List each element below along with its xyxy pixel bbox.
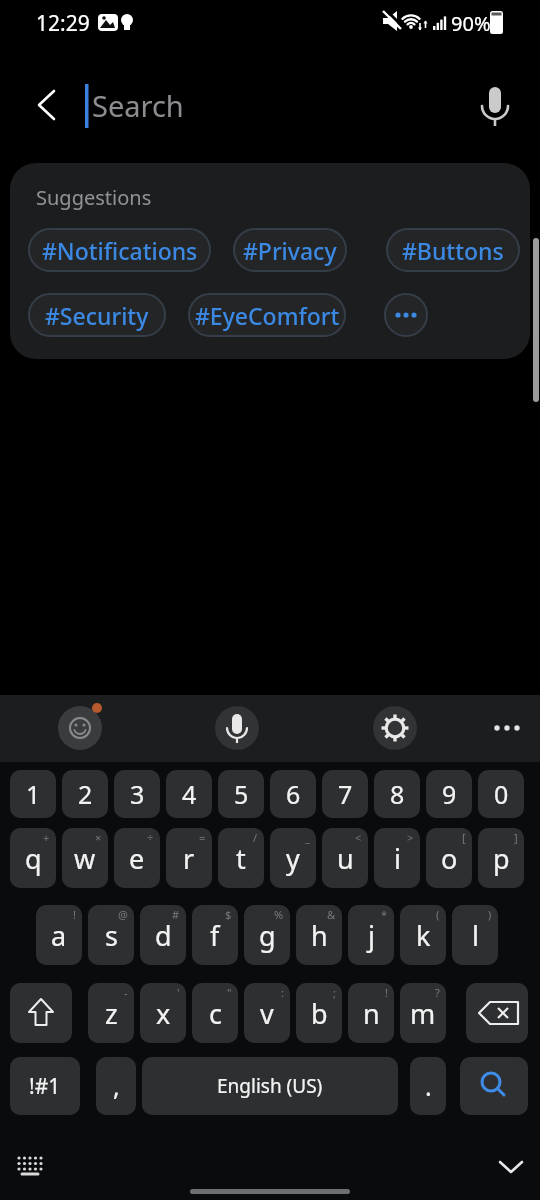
staticText: d: [155, 917, 172, 954]
staticText: u: [337, 840, 354, 877]
staticText: g: [259, 917, 276, 954]
staticText: 9: [442, 777, 457, 811]
staticText: #EyeComfort: [195, 300, 340, 331]
staticText: z: [105, 995, 118, 1032]
staticText: ]: [514, 830, 518, 845]
staticText: -: [124, 985, 128, 1000]
staticText: j: [368, 917, 375, 954]
staticText: 5: [234, 777, 249, 811]
staticText: o: [441, 840, 458, 877]
staticText: l: [472, 917, 479, 954]
staticText: [: [462, 830, 466, 845]
staticText: p: [493, 840, 510, 877]
staticText: :: [281, 985, 284, 1000]
staticText: Suggestions: [36, 184, 152, 211]
staticText: 90%: [451, 10, 491, 37]
staticText: s: [105, 917, 118, 954]
staticText: #: [172, 907, 180, 922]
staticText: 12:29: [36, 9, 90, 38]
staticText: %: [274, 907, 284, 922]
staticText: 8: [390, 777, 405, 811]
staticText: <: [355, 830, 362, 845]
staticText: 2: [78, 777, 93, 811]
staticText: !#1: [29, 1072, 61, 1101]
staticText: k: [416, 917, 431, 954]
staticText: m: [410, 995, 436, 1032]
staticText: h: [311, 917, 328, 954]
staticText: b: [311, 995, 328, 1032]
staticText: c: [209, 995, 222, 1032]
staticText: .: [425, 1069, 432, 1103]
staticText: #Privacy: [243, 235, 337, 266]
staticText: ,: [113, 1069, 120, 1103]
staticText: v: [260, 995, 274, 1032]
staticText: *: [381, 907, 388, 922]
staticText: a: [51, 917, 67, 954]
staticText: /: [253, 830, 258, 845]
staticText: _: [305, 830, 310, 845]
staticText: (: [436, 907, 440, 922]
staticText: i: [394, 840, 401, 877]
staticText: 6: [286, 777, 301, 811]
staticText: &: [327, 907, 336, 922]
staticText: y: [286, 840, 300, 877]
staticText: ×: [95, 830, 102, 845]
staticText: t: [236, 840, 246, 877]
staticText: 4: [182, 777, 197, 811]
staticText: +: [43, 830, 50, 845]
staticText: x: [156, 995, 171, 1032]
staticText: ÷: [147, 830, 154, 845]
staticText: ': [177, 985, 180, 1000]
staticText: ;: [333, 985, 336, 1000]
staticText: e: [129, 840, 145, 877]
staticText: 0: [494, 777, 509, 811]
staticText: f: [210, 917, 220, 954]
staticText: =: [199, 830, 206, 845]
staticText: @: [118, 907, 128, 922]
staticText: #Buttons: [402, 235, 504, 266]
staticText: Search: [92, 86, 184, 125]
staticText: r: [183, 840, 195, 877]
staticText: 1: [26, 777, 41, 811]
staticText: w: [74, 840, 96, 877]
staticText: n: [363, 995, 380, 1032]
staticText: ?: [435, 985, 440, 1000]
staticText: >: [407, 830, 414, 845]
staticText: ": [227, 985, 232, 1000]
staticText: !: [385, 985, 388, 1000]
staticText: #Security: [45, 300, 149, 331]
staticText: 3: [130, 777, 145, 811]
staticText: 7: [338, 777, 353, 811]
staticText: q: [25, 840, 42, 877]
staticText: $: [225, 907, 232, 922]
staticText: English (US): [217, 1073, 323, 1099]
staticText: ): [488, 907, 492, 922]
staticText: #Notifications: [42, 235, 198, 266]
staticText: !: [73, 907, 76, 922]
